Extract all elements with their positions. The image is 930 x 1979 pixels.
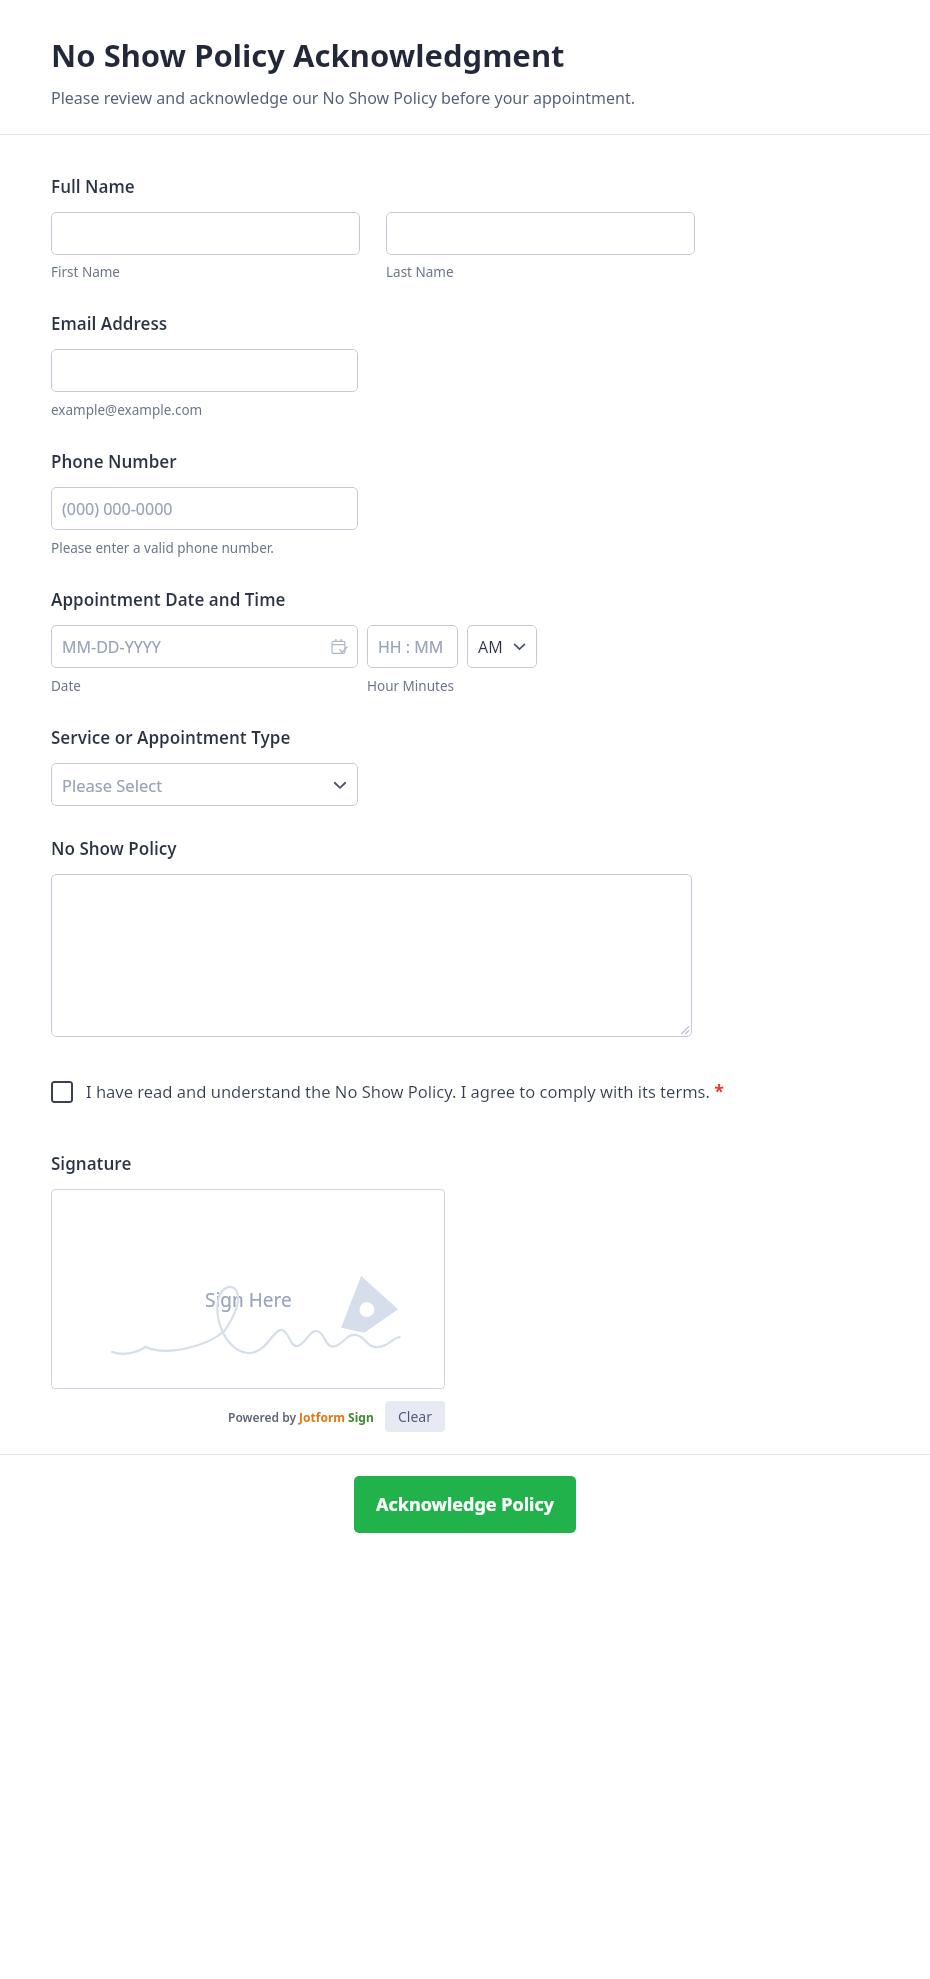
staticText: No Show Policy Acknowledgment [51, 34, 565, 76]
button[interactable]: Acknowledge Policy [354, 1476, 576, 1533]
staticText: Clear [398, 1407, 432, 1426]
button[interactable]: AM or PM [467, 625, 537, 668]
staticText: First Name [51, 263, 120, 281]
staticText: (000) 000-0000 [62, 498, 173, 520]
button[interactable]: Clear [385, 1401, 445, 1432]
staticText: Signature [51, 1152, 132, 1175]
button[interactable]: Date [51, 625, 358, 668]
staticText: I have read and understand the No Show P… [86, 1079, 724, 1104]
staticText: Email Address [51, 312, 168, 335]
button[interactable]: Signature pad, sign here [51, 1189, 445, 1389]
staticText: Powered by Jotform Sign [228, 1409, 374, 1425]
button[interactable]: First Name [51, 212, 360, 255]
staticText: Hour Minutes [367, 677, 454, 695]
staticText: Sign Here [205, 1287, 292, 1313]
button[interactable]: No Show Policy text area [51, 874, 692, 1037]
staticText: Full Name [51, 175, 135, 198]
staticText: Acknowledge Policy [376, 1492, 554, 1517]
staticText: HH : MM [378, 636, 444, 658]
button[interactable]: Email Address [51, 349, 358, 392]
staticText: No Show Policy [51, 837, 177, 860]
staticText: MM-DD-YYYY [62, 636, 161, 658]
staticText: Date [51, 677, 81, 695]
staticText: Please enter a valid phone number. [51, 539, 274, 557]
staticText: Please Select [62, 774, 163, 796]
staticText: AM [478, 636, 503, 658]
staticText: Phone Number [51, 450, 177, 473]
staticText: Last Name [386, 263, 454, 281]
button[interactable]: Last Name [386, 212, 695, 255]
button[interactable]: Service or Appointment Type [51, 763, 358, 806]
staticText: Service or Appointment Type [51, 726, 291, 749]
staticText: Please review and acknowledge our No Sho… [51, 87, 636, 109]
staticText: example@example.com [51, 401, 203, 419]
button[interactable]: I have read and understand the No Show P… [51, 1079, 741, 1104]
staticText: Appointment Date and Time [51, 588, 286, 611]
button[interactable]: Phone Number [51, 487, 358, 530]
button[interactable]: Hour Minutes [367, 625, 458, 668]
